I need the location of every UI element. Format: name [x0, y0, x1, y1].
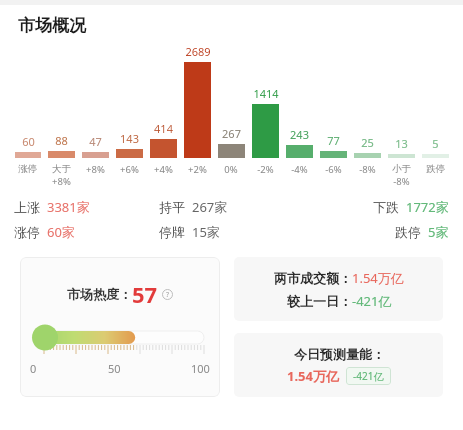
- staticText: 15家: [192, 223, 220, 241]
- staticText: 市场热度：: [67, 286, 132, 302]
- button[interactable]: 上涨: [14, 198, 159, 216]
- staticText: 1772家: [406, 198, 449, 216]
- staticText: +4%: [154, 163, 173, 176]
- staticText: 267: [222, 126, 241, 141]
- staticText: -4%: [291, 163, 308, 176]
- staticText: 13: [395, 136, 408, 151]
- staticText: 414: [154, 121, 173, 136]
- staticText: 涨停: [18, 163, 37, 175]
- button[interactable]: 今日预测量能：: [234, 333, 443, 397]
- button[interactable]: 涨停: [14, 223, 159, 241]
- staticText: 2689: [185, 44, 211, 59]
- staticText: 1.54万亿: [352, 269, 404, 287]
- button[interactable]: 两市成交额：: [234, 257, 443, 321]
- staticText: 60家: [47, 223, 75, 241]
- staticText: 100: [191, 361, 210, 376]
- staticText: 跌停: [426, 163, 445, 175]
- staticText: 跌停: [395, 224, 421, 240]
- button[interactable]: 帮助说明: [162, 289, 173, 300]
- staticText: 267家: [192, 198, 228, 216]
- button[interactable]: 持平: [159, 198, 304, 216]
- staticText: 60: [22, 134, 35, 149]
- staticText: -2%: [257, 163, 274, 176]
- staticText: -421亿: [352, 292, 392, 310]
- staticText: +6%: [120, 163, 139, 176]
- staticText: 1.54万亿: [287, 367, 339, 385]
- staticText: 243: [290, 127, 309, 142]
- staticText: 0%: [224, 163, 238, 176]
- staticText: -6%: [325, 163, 342, 176]
- staticText: 25: [361, 135, 374, 150]
- staticText: +8%: [52, 175, 71, 188]
- staticText: 77: [327, 133, 340, 148]
- staticText: 1414: [253, 86, 279, 101]
- staticText: 5: [432, 136, 439, 151]
- staticText: 下跌: [373, 199, 399, 215]
- staticText: -8%: [359, 163, 376, 176]
- staticText: 57: [132, 279, 158, 309]
- staticText: 上涨: [14, 199, 40, 215]
- staticText: 小于: [392, 163, 411, 175]
- button[interactable]: 下跌: [304, 198, 449, 216]
- staticText: 市场概况: [18, 15, 86, 36]
- staticText: 50: [108, 361, 121, 376]
- staticText: 涨停: [14, 224, 40, 240]
- button[interactable]: 市场热度：: [20, 257, 220, 397]
- staticText: +8%: [86, 163, 105, 176]
- staticText: 3381家: [47, 198, 90, 216]
- button[interactable]: 跌停: [304, 223, 449, 241]
- staticText: 停牌: [159, 224, 185, 240]
- staticText: 143: [120, 131, 139, 146]
- staticText: 0: [30, 361, 37, 376]
- staticText: 两市成交额：: [274, 270, 352, 286]
- staticText: 较上一日：: [287, 293, 352, 309]
- button[interactable]: 停牌: [159, 223, 304, 241]
- staticText: +2%: [188, 163, 207, 176]
- staticText: 88: [55, 133, 68, 148]
- staticText: 47: [89, 134, 102, 149]
- staticText: 大于: [52, 163, 71, 175]
- staticText: 5家: [428, 223, 449, 241]
- staticText: -421亿: [353, 369, 384, 383]
- staticText: -8%: [393, 175, 410, 188]
- staticText: 持平: [159, 199, 185, 215]
- staticText: ?: [166, 290, 170, 300]
- staticText: 今日预测量能：: [294, 346, 385, 362]
